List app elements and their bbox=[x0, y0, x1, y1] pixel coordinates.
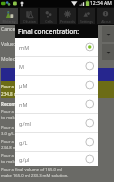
staticText: Molecular weight bbox=[1, 56, 42, 63]
staticText: µM bbox=[19, 82, 86, 89]
staticText: Settings bbox=[80, 19, 93, 24]
staticText: g/ml bbox=[19, 120, 86, 127]
button[interactable]: Molarity bbox=[0, 8, 18, 24]
staticText: Pour a final volume of 234.8 ml bbox=[1, 109, 63, 115]
staticText: Protocols bbox=[60, 19, 75, 24]
staticText: Pour a final volume of 165.0 ml bbox=[1, 167, 63, 173]
staticText: make 165.0 ml 233.3 mM solution. bbox=[1, 173, 69, 179]
staticText: Molarity bbox=[2, 19, 16, 24]
staticText: Cells bbox=[45, 19, 53, 24]
staticText: Recommended protocol bbox=[1, 101, 54, 107]
button[interactable]: g/µl bbox=[15, 152, 98, 166]
staticText: Pour a final volume of 234.8 ml bbox=[1, 139, 63, 145]
button[interactable]: Dilution bbox=[20, 8, 38, 24]
staticText: About bbox=[101, 19, 111, 24]
button[interactable]: Protocols bbox=[59, 8, 76, 24]
button[interactable]: g/ml bbox=[15, 114, 98, 132]
button[interactable]: Select unit bbox=[102, 44, 114, 60]
staticText: Dilution bbox=[23, 19, 36, 24]
staticText: to make the final solution. bbox=[1, 159, 53, 165]
staticText: to make the solution ready. bbox=[1, 115, 55, 121]
staticText: Pour a final volume of 234.8 ml bbox=[1, 125, 63, 131]
button[interactable]: mM bbox=[15, 38, 98, 56]
button[interactable]: g/L bbox=[15, 133, 98, 151]
button[interactable]: nM bbox=[15, 95, 98, 113]
staticText: Cancel bbox=[1, 26, 17, 33]
staticText: Pour a final volume of bbox=[1, 84, 45, 90]
staticText: 3.0 g/L of the chemical. bbox=[1, 131, 47, 137]
button[interactable]: Select unit bbox=[102, 26, 114, 42]
staticText: M bbox=[19, 63, 86, 70]
staticText: Value: bbox=[1, 41, 16, 48]
staticText: mM bbox=[19, 44, 86, 51]
button[interactable]: Settings bbox=[78, 8, 95, 24]
staticText: g/µl bbox=[19, 156, 86, 163]
staticText: 12:34 AM bbox=[90, 0, 112, 7]
staticText: Final concentration: bbox=[18, 27, 80, 36]
staticText: nM bbox=[19, 101, 86, 108]
button[interactable]: About bbox=[97, 8, 114, 24]
button[interactable]: M bbox=[15, 57, 98, 75]
staticText: 234.8 ml of the solution. bbox=[1, 145, 49, 151]
staticText: 234.8 ml of solution bbox=[1, 91, 44, 97]
button[interactable]: Cells bbox=[40, 8, 57, 24]
staticText: Pour a final volume of 234.8 ml bbox=[1, 153, 63, 159]
button[interactable]: µM bbox=[15, 76, 98, 94]
staticText: g/L bbox=[19, 139, 86, 146]
